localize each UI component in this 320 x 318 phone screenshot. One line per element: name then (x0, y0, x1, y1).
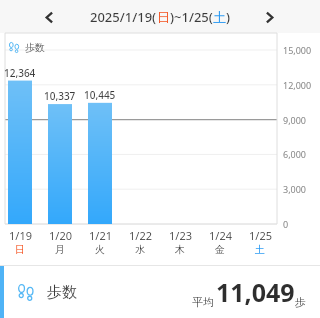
staticText: 12,364 (4, 66, 36, 80)
staticText: 日 (15, 243, 25, 256)
staticText: 1/23 (169, 228, 192, 243)
staticText: 10,445 (84, 88, 116, 102)
staticText: 土 (255, 243, 265, 256)
staticText: 歩 (295, 295, 306, 309)
staticText: 1/25 (249, 228, 272, 243)
staticText: 月 (55, 243, 65, 256)
staticText: 1/24 (209, 228, 232, 243)
button[interactable]: 歩数 (0, 266, 320, 318)
staticText: 1/20 (49, 228, 72, 243)
staticText: 1/22 (129, 228, 152, 243)
staticText: 3,000 (283, 183, 307, 195)
staticText: 歩数 (47, 283, 77, 302)
staticText: 10,337 (44, 89, 76, 103)
staticText: 9,000 (283, 114, 307, 126)
staticText: 金 (215, 243, 225, 256)
staticText: 11,049 (216, 275, 295, 309)
staticText: 平均 (192, 295, 214, 309)
button[interactable]: Previous week (36, 4, 62, 30)
staticText: 1/19 (9, 228, 32, 243)
staticText: 12,000 (283, 79, 312, 91)
staticText: ) (226, 8, 231, 26)
staticText: 15,000 (283, 44, 312, 56)
staticText: 水 (135, 243, 145, 256)
staticText: 1/21 (89, 228, 112, 243)
staticText: 火 (95, 243, 105, 256)
staticText: )~1/25( (170, 8, 213, 26)
staticText: 2025/1/19( (90, 8, 157, 26)
staticText: 0 (283, 218, 289, 230)
staticText: 木 (175, 243, 185, 256)
staticText: 歩数 (25, 41, 45, 54)
staticText: 6,000 (283, 148, 307, 160)
button[interactable]: Next week (256, 4, 282, 30)
staticText: 日 (157, 9, 170, 25)
staticText: 土 (213, 9, 226, 25)
